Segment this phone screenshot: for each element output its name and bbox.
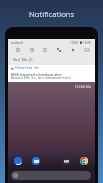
- staticText: 100%: [70, 41, 79, 45]
- button[interactable]: App: [80, 157, 88, 165]
- button[interactable]: Quick setting 5: [69, 46, 76, 53]
- staticText: Follow Feed · 5m: [15, 66, 40, 70]
- button[interactable]: Quick setting 6: [83, 46, 90, 53]
- button[interactable]: Quick setting 3: [41, 46, 48, 53]
- button[interactable]: Quick setting 4: [55, 46, 62, 53]
- button[interactable]: App: [62, 157, 70, 165]
- staticText: Amazon.com, Inc. hit a downwards trend..…: [11, 76, 73, 80]
- staticText: Wed, Mar 20: [13, 57, 33, 61]
- staticText: android: [11, 41, 23, 45]
- staticText: Notifications: [29, 8, 75, 19]
- staticText: CLEAR ALL: [75, 84, 92, 88]
- button[interactable]: App: [32, 157, 40, 165]
- button[interactable]: App: [14, 157, 22, 165]
- staticText: G: [14, 173, 17, 178]
- staticText: MGB triggered a breakout alert: [11, 72, 62, 77]
- staticText: 10:00: [83, 41, 92, 45]
- button[interactable]: Search: [11, 171, 91, 180]
- button[interactable]: CLEAR ALL: [75, 84, 92, 88]
- button[interactable]: Follow Feed · 5m: [8, 65, 95, 82]
- button[interactable]: Quick setting 2: [28, 46, 35, 53]
- button[interactable]: Quick setting 1: [14, 46, 21, 53]
